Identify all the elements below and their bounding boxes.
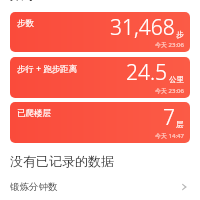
button[interactable]: 已爬楼层 (10, 102, 190, 143)
staticText: 层 (176, 120, 184, 129)
staticText: 公里 (169, 75, 184, 84)
staticText: 已爬楼层 (17, 108, 51, 119)
staticText: 今天 23:06 (155, 41, 184, 49)
staticText: 步 (176, 30, 184, 39)
staticText: 锻炼分钟数 (10, 181, 58, 193)
staticText: 步数 (17, 18, 34, 29)
staticText: 今天 23:06 (155, 87, 184, 95)
staticText: 步行 + 跑步距离 (17, 63, 78, 75)
staticText: 7 (163, 103, 175, 132)
staticText: 今天 (10, 0, 38, 1)
button[interactable]: 步数 (10, 12, 190, 52)
button[interactable]: 步行 + 跑步距离 (10, 57, 190, 98)
staticText: 24.5 (126, 58, 168, 87)
staticText: 31,468 (110, 13, 175, 42)
staticText: 今天 14:47 (155, 132, 184, 140)
button[interactable]: 锻炼分钟数 (10, 177, 190, 197)
other: 打开锻炼分钟数 (180, 182, 190, 192)
staticText: 没有已记录的数据 (10, 153, 114, 169)
